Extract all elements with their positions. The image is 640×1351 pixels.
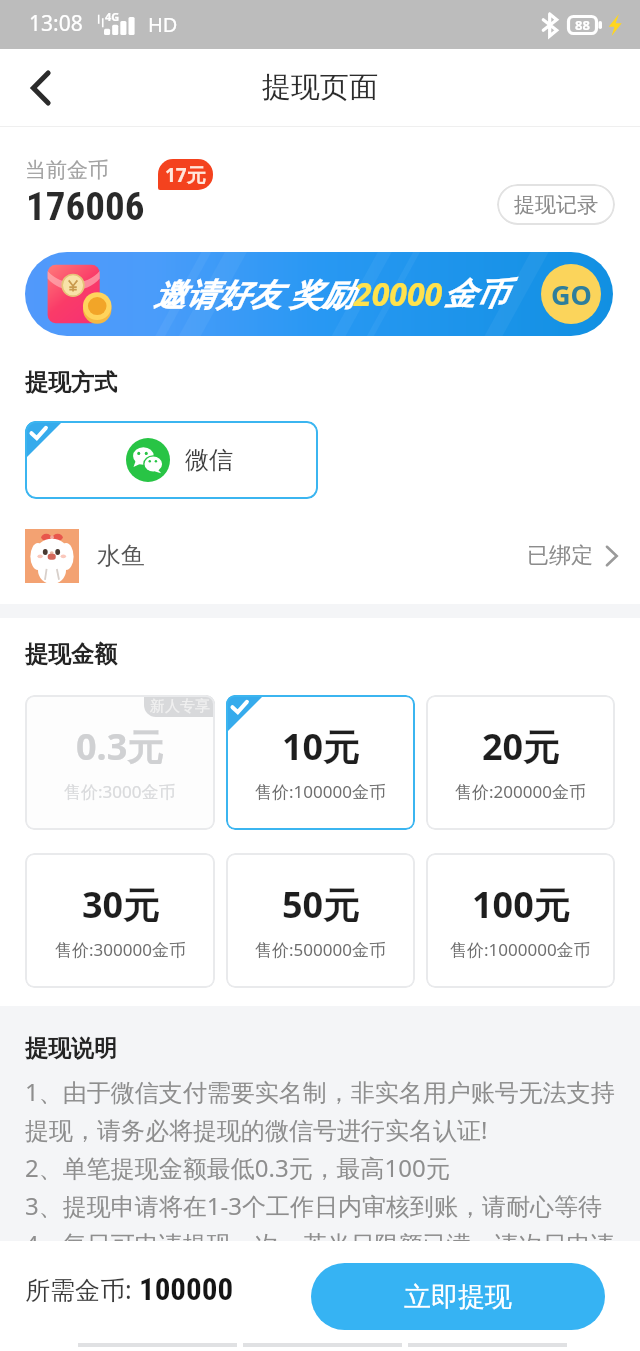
staticText: 所需金币: (25, 1272, 139, 1306)
button[interactable]: 新人专享 (25, 695, 215, 830)
staticText: 13:08 (29, 9, 83, 38)
staticText: 20000 (354, 272, 443, 316)
staticText: 售价:100000金币 (255, 780, 386, 803)
staticText: 0.3元 (76, 722, 164, 771)
staticText: 20元 (482, 722, 560, 771)
staticText: 已绑定 (527, 542, 593, 570)
staticText: 金币 (443, 274, 507, 314)
staticText: 88 (575, 16, 590, 34)
staticText: 4G (105, 9, 120, 24)
staticText: 当前金币 (25, 157, 109, 183)
staticText: 新人专享 (150, 697, 210, 716)
staticText: 17元 (165, 162, 206, 188)
staticText: 176006 (26, 184, 145, 230)
button[interactable]: 邀请好友 奖励 (25, 252, 613, 336)
button[interactable]: 立即提现 (311, 1263, 605, 1330)
staticText: 10元 (282, 722, 360, 771)
staticText: 1、由于微信支付需要实名制，非实名用户账号无法支持提现，请务必将提现的微信号进行… (25, 1075, 618, 1241)
staticText: 水鱼 (97, 541, 145, 571)
staticText: 微信 (185, 445, 233, 475)
button[interactable]: 50元 (226, 853, 415, 988)
staticText: 100000 (139, 1271, 234, 1307)
button[interactable]: 提现记录 (497, 184, 615, 225)
staticText: 提现方式 (25, 368, 117, 397)
staticText: GO (551, 276, 592, 313)
staticText: 提现金额 (25, 640, 117, 669)
button[interactable]: Back (8, 56, 72, 120)
staticText: 立即提现 (404, 1280, 512, 1314)
staticText: 提现记录 (514, 192, 598, 218)
staticText: 售价:3000金币 (64, 780, 176, 803)
button[interactable]: 水鱼 (0, 520, 640, 592)
staticText: 邀请好友 奖励 (153, 272, 354, 316)
staticText: 售价:500000金币 (255, 938, 386, 961)
staticText: 售价:1000000金币 (450, 938, 591, 961)
staticText: HD (148, 11, 178, 38)
staticText: 售价:300000金币 (55, 938, 186, 961)
button[interactable]: GO (541, 264, 601, 324)
button[interactable]: 10元 (226, 695, 415, 830)
staticText: 50元 (282, 880, 360, 929)
staticText: 30元 (82, 880, 160, 929)
button[interactable]: 微信 (25, 421, 318, 499)
staticText: 100元 (472, 880, 570, 929)
staticText: 提现页面 (262, 69, 378, 106)
button[interactable]: 30元 (25, 853, 215, 988)
staticText: 售价:200000金币 (455, 780, 586, 803)
button[interactable]: 100元 (426, 853, 615, 988)
button[interactable]: 20元 (426, 695, 615, 830)
staticText: 提现说明 (25, 1034, 117, 1063)
